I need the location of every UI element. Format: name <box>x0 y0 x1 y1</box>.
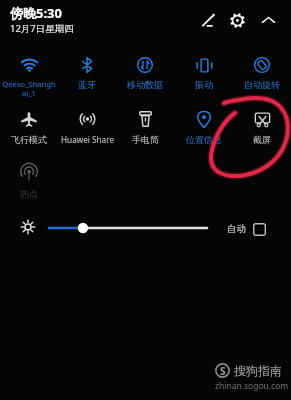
button[interactable]: 自动旋转 <box>233 51 291 89</box>
button[interactable]: 蓝牙 <box>58 51 116 89</box>
staticText: 自动 <box>227 223 246 235</box>
button[interactable]: 热点 <box>0 158 58 196</box>
button[interactable]: 飞行模式 <box>0 105 58 143</box>
button[interactable]: Edit <box>198 10 218 30</box>
button[interactable]: Collapse <box>258 10 278 30</box>
staticText: 移动数据 <box>127 79 163 90</box>
button[interactable]: Brightness <box>21 220 35 234</box>
staticText: 蓝牙 <box>78 79 96 90</box>
staticText: 傍晚5:30 <box>10 4 62 22</box>
button[interactable]: 自动 <box>227 221 266 237</box>
staticText: 12月7日星期四 <box>10 22 74 35</box>
staticText: 截屏 <box>253 134 271 145</box>
button[interactable]: Settings <box>227 10 247 30</box>
button[interactable]: Huawei Share <box>58 105 116 143</box>
button[interactable]: 位置信息 <box>175 105 233 143</box>
staticText: 手电筒 <box>132 134 159 145</box>
staticText: 振动 <box>195 79 213 90</box>
staticText: S <box>220 364 226 378</box>
button[interactable]: 截屏 <box>233 105 291 143</box>
staticText: Qeexo_Shangh ai_1 <box>2 79 56 98</box>
staticText: 自动旋转 <box>244 79 280 90</box>
staticText: 飞行模式 <box>11 134 47 145</box>
staticText: 搜狗指南 <box>234 363 282 378</box>
staticText: Huawei Share <box>61 134 114 145</box>
button[interactable]: 移动数据 <box>116 51 174 89</box>
staticText: 位置信息 <box>186 134 222 145</box>
button[interactable]: 振动 <box>175 51 233 89</box>
button[interactable]: 手电筒 <box>116 105 174 143</box>
button[interactable]: Qeexo_Shangh ai_1 <box>0 51 58 89</box>
staticText: 热点 <box>20 188 38 199</box>
staticText: zhinan.sogou.com <box>215 380 289 392</box>
button[interactable]: Brightness slider <box>44 221 212 235</box>
